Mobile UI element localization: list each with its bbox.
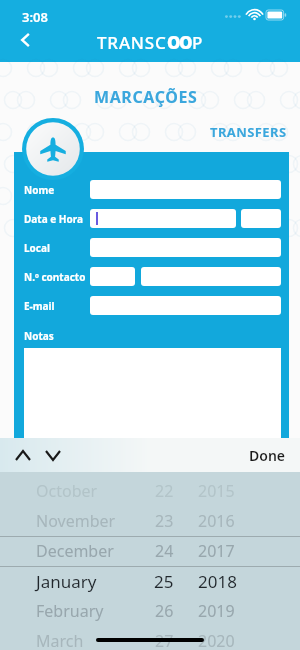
- button[interactable]: December: [36, 536, 132, 566]
- button[interactable]: January: [36, 566, 132, 596]
- staticText: 25: [154, 570, 174, 593]
- staticText: 2018: [198, 570, 237, 593]
- staticText: 3:08: [22, 8, 48, 26]
- button[interactable]: November: [36, 506, 132, 536]
- staticText: 2019: [198, 600, 235, 622]
- button[interactable]: Done: [241, 442, 294, 469]
- staticText: 27: [155, 630, 174, 650]
- staticText: January: [36, 570, 97, 593]
- button[interactable]: 2020: [198, 626, 250, 650]
- staticText: Nome: [24, 183, 55, 197]
- button[interactable]: Back: [8, 22, 44, 58]
- staticText: 26: [155, 600, 174, 622]
- button[interactable]: 2018: [198, 566, 250, 596]
- staticText: December: [36, 540, 114, 562]
- staticText: N.º contacto: [24, 270, 86, 284]
- staticText: E-mail: [24, 299, 55, 313]
- button[interactable]: 2019: [198, 596, 250, 626]
- staticText: 24: [155, 540, 174, 562]
- staticText: MARCAÇÕES: [94, 86, 198, 108]
- staticText: Local: [24, 241, 50, 255]
- button[interactable]: Transfers: [22, 118, 84, 180]
- staticText: P: [192, 31, 204, 54]
- staticText: 2015: [198, 480, 235, 502]
- staticText: 22: [155, 480, 174, 502]
- button[interactable]: [141, 267, 281, 286]
- button[interactable]: 2015: [198, 476, 250, 506]
- staticText: March: [36, 630, 84, 650]
- staticText: February: [36, 600, 104, 622]
- staticText: Notas: [24, 329, 54, 343]
- button[interactable]: 2016: [198, 506, 250, 536]
- button[interactable]: 24: [146, 536, 182, 566]
- button[interactable]: [241, 209, 281, 228]
- staticText: OO: [167, 31, 192, 54]
- button[interactable]: 2017: [198, 536, 250, 566]
- button[interactable]: [90, 209, 236, 228]
- staticText: 2016: [198, 510, 235, 532]
- button[interactable]: February: [36, 596, 132, 626]
- staticText: 2020: [198, 630, 235, 650]
- button[interactable]: Previous field: [8, 440, 38, 470]
- button[interactable]: 23: [146, 506, 182, 536]
- staticText: TRANSFERS: [210, 123, 287, 141]
- staticText: Done: [249, 446, 286, 465]
- button[interactable]: Next field: [38, 440, 68, 470]
- staticText: TRANSC: [97, 31, 167, 54]
- button[interactable]: 25: [146, 566, 182, 596]
- staticText: 23: [155, 510, 174, 532]
- button[interactable]: [90, 180, 281, 199]
- button[interactable]: 26: [146, 596, 182, 626]
- button[interactable]: 22: [146, 476, 182, 506]
- button[interactable]: October: [36, 476, 132, 506]
- staticText: November: [36, 510, 116, 532]
- staticText: 2017: [198, 540, 235, 562]
- button[interactable]: [90, 296, 281, 315]
- staticText: October: [36, 480, 98, 502]
- button[interactable]: [90, 267, 135, 286]
- button[interactable]: March: [36, 626, 132, 650]
- button[interactable]: [90, 238, 281, 257]
- button[interactable]: 27: [146, 626, 182, 650]
- staticText: Data e Hora: [24, 212, 83, 226]
